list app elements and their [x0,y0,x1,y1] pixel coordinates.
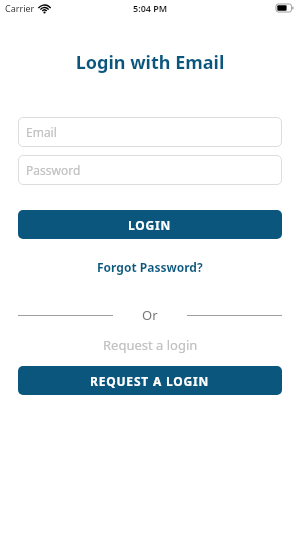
staticText: Login with Email [0,50,300,75]
button[interactable]: REQUEST A LOGIN [18,366,282,395]
staticText: Password [26,162,81,178]
button[interactable]: Request a login [0,336,300,354]
staticText: Request a login [103,336,198,354]
staticText: Email [26,124,57,140]
button[interactable]: Password [18,155,282,185]
button[interactable]: LOGIN [18,210,282,239]
staticText: LOGIN [128,217,172,233]
staticText: Carrier [5,2,35,14]
staticText: REQUEST A LOGIN [90,373,210,389]
button[interactable]: Email [18,117,282,147]
staticText: Or [142,306,158,324]
staticText: 5:04 PM [133,2,168,14]
button[interactable]: Forgot Password? [0,259,300,275]
staticText: Forgot Password? [97,259,203,275]
